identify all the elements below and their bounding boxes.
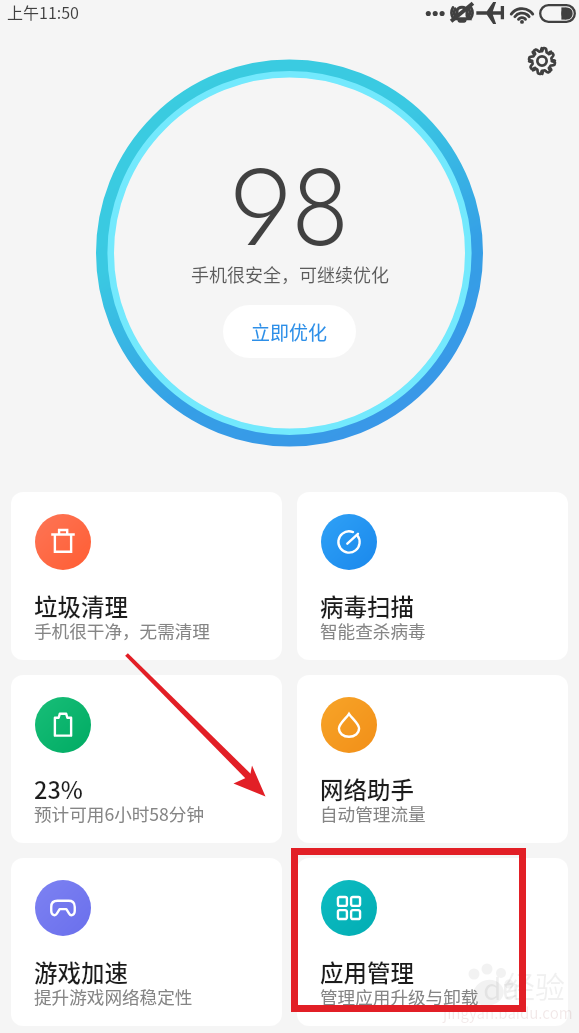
staticText: 网络助手 — [320, 772, 414, 806]
staticText: 手机很安全，可继续优化 — [191, 261, 389, 287]
button[interactable]: 立即优化 — [223, 305, 356, 358]
staticText: 98 — [230, 128, 350, 286]
staticText: du — [483, 965, 520, 1008]
staticText: 提升游戏网络稳定性 — [34, 984, 193, 1009]
staticText: 手机很干净，无需清理 — [34, 618, 210, 643]
staticText: 预计可用6小时58分钟 — [34, 801, 205, 826]
staticText: 病毒扫描 — [320, 589, 414, 623]
button[interactable]: 病毒扫描 — [297, 492, 568, 660]
staticText: 上午11:50 — [7, 0, 79, 23]
staticText: 游戏加速 — [34, 955, 128, 989]
staticText: 经验 — [505, 963, 565, 1006]
button[interactable]: 23% — [11, 675, 282, 843]
staticText: 自动管理流量 — [320, 801, 426, 826]
button[interactable]: Settings — [527, 46, 557, 76]
staticText: 智能查杀病毒 — [320, 618, 426, 643]
button[interactable]: 垃圾清理 — [11, 492, 282, 660]
staticText: 垃圾清理 — [34, 589, 128, 623]
button[interactable]: 应用管理 — [297, 858, 568, 1026]
staticText: jingyan.baidu.com — [443, 1002, 573, 1024]
button[interactable]: 网络助手 — [297, 675, 568, 843]
button[interactable]: 游戏加速 — [11, 858, 282, 1026]
staticText: 立即优化 — [251, 318, 328, 346]
staticText: 23% — [34, 772, 83, 806]
staticText: 应用管理 — [320, 955, 414, 989]
staticText: 管理应用升级与卸载 — [320, 984, 479, 1009]
